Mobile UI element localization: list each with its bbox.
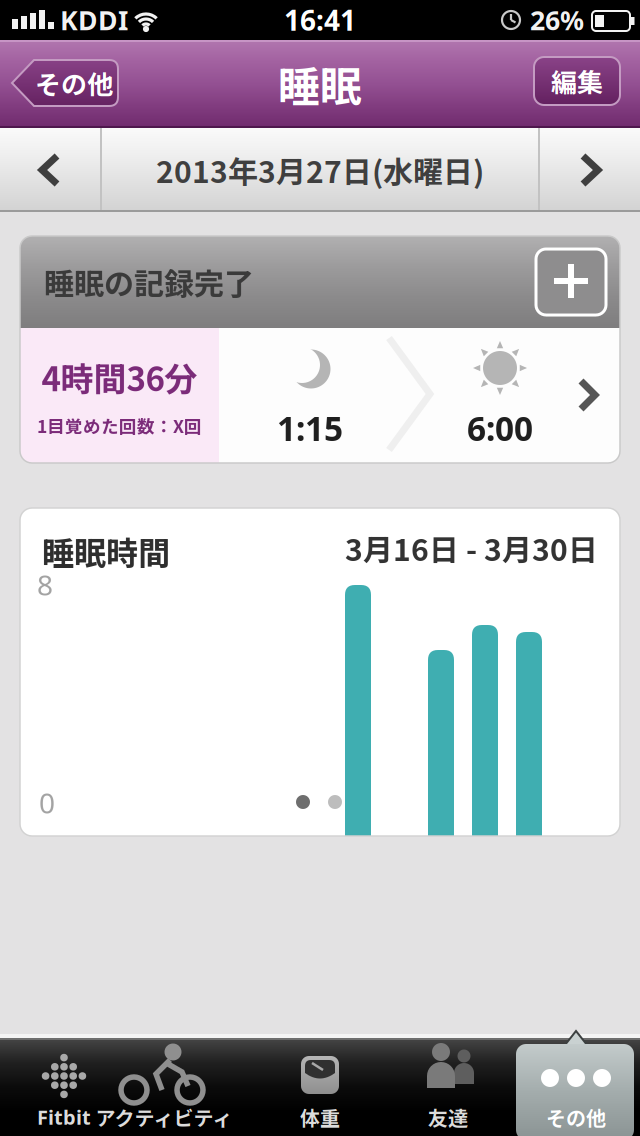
button[interactable]: 体重 [0, 1026, 128, 1136]
button[interactable]: その他 [10, 57, 120, 109]
staticText: アクティビティ [95, 1102, 232, 1131]
button[interactable]: 前の日 [0, 128, 100, 212]
staticText: 体重 [300, 1102, 340, 1131]
staticText: 睡眠 [278, 54, 362, 114]
staticText: その他 [546, 1102, 606, 1131]
staticText: 3月16日 - 3月30日 [345, 526, 598, 570]
button[interactable]: 睡眠を追加 [536, 249, 606, 315]
staticText: その他 [35, 64, 113, 102]
staticText: 4時間36分 [41, 353, 197, 401]
staticText: 0 [39, 784, 55, 821]
button[interactable]: 友達 [0, 1026, 128, 1136]
staticText: 編集 [551, 62, 603, 100]
staticText: 26% [530, 2, 584, 38]
staticText: 1:15 [277, 406, 343, 450]
button[interactable]: その他 [0, 1026, 128, 1136]
button[interactable]: 次の日 [540, 128, 640, 212]
button[interactable]: 4時間36分 [20, 328, 620, 463]
staticText: 友達 [428, 1102, 468, 1131]
staticText: Fitbit [37, 1104, 91, 1130]
staticText: 16:41 [284, 1, 356, 39]
button[interactable]: アクティビティ [0, 1026, 128, 1136]
staticText: 睡眠時間 [42, 528, 170, 574]
staticText: 2013年3月27日(水曜日) [156, 148, 484, 192]
staticText: 6:00 [467, 406, 533, 450]
button[interactable]: Fitbit [0, 1026, 128, 1136]
staticText: KDDI [60, 2, 128, 38]
staticText: 睡眠の記録完了 [44, 260, 254, 304]
staticText: 8 [37, 566, 53, 603]
button[interactable]: 編集 [534, 57, 620, 105]
staticText: 1目覚めた回数：X回 [37, 413, 202, 438]
